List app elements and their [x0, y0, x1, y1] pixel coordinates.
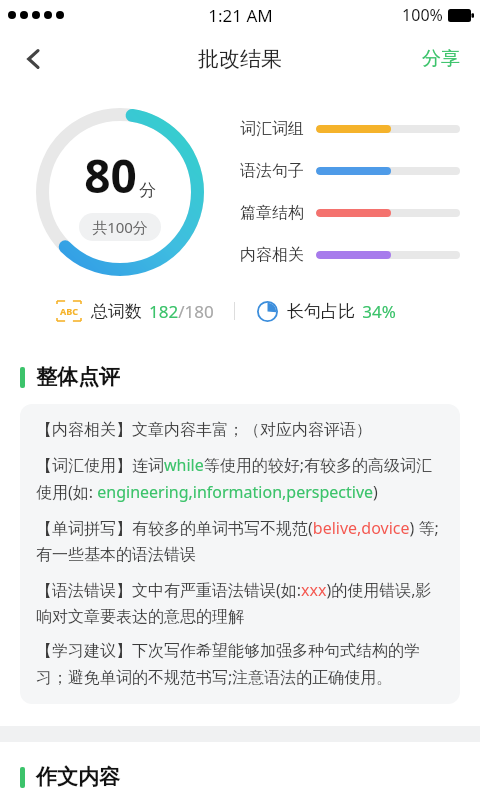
staticText: 内容相关 — [240, 245, 304, 265]
staticText: 分 — [139, 180, 156, 201]
staticText: 80 — [84, 144, 137, 207]
staticText: 总词数 — [91, 301, 142, 322]
button[interactable]: 分享 — [414, 39, 468, 79]
staticText: 长句占比 — [287, 301, 355, 322]
staticText: 100% — [402, 4, 443, 26]
staticText: 【词汇使用】连词while等使用的较好;有较多的高级词汇使用(如: engine… — [36, 454, 444, 503]
staticText: 共100分 — [92, 217, 148, 237]
staticText: 34% — [362, 300, 396, 323]
button[interactable]: Back — [10, 35, 58, 83]
staticText: 【单词拼写】有较多的单词书写不规范(belive,dovice) 等;有一些基本… — [36, 517, 444, 565]
staticText: 词汇词组 — [240, 119, 304, 139]
staticText: 【内容相关】文章内容丰富；（对应内容评语） — [36, 420, 372, 440]
staticText: 分享 — [422, 47, 460, 71]
staticText: 篇章结构 — [240, 203, 304, 223]
staticText: 语法句子 — [240, 161, 304, 181]
staticText: 182/180 — [149, 300, 214, 323]
staticText: 1:21 AM — [208, 4, 273, 27]
staticText: 【语法错误】文中有严重语法错误(如:xxx)的使用错误,影响对文章要表达的意思的… — [36, 579, 444, 627]
staticText: ABC — [60, 305, 78, 317]
staticText: 作文内容 — [36, 764, 120, 790]
staticText: 整体点评 — [36, 364, 120, 390]
staticText: 批改结果 — [198, 46, 282, 72]
staticText: 【学习建议】下次写作希望能够加强多种句式结构的学习；避免单词的不规范书写;注意语… — [36, 641, 444, 688]
